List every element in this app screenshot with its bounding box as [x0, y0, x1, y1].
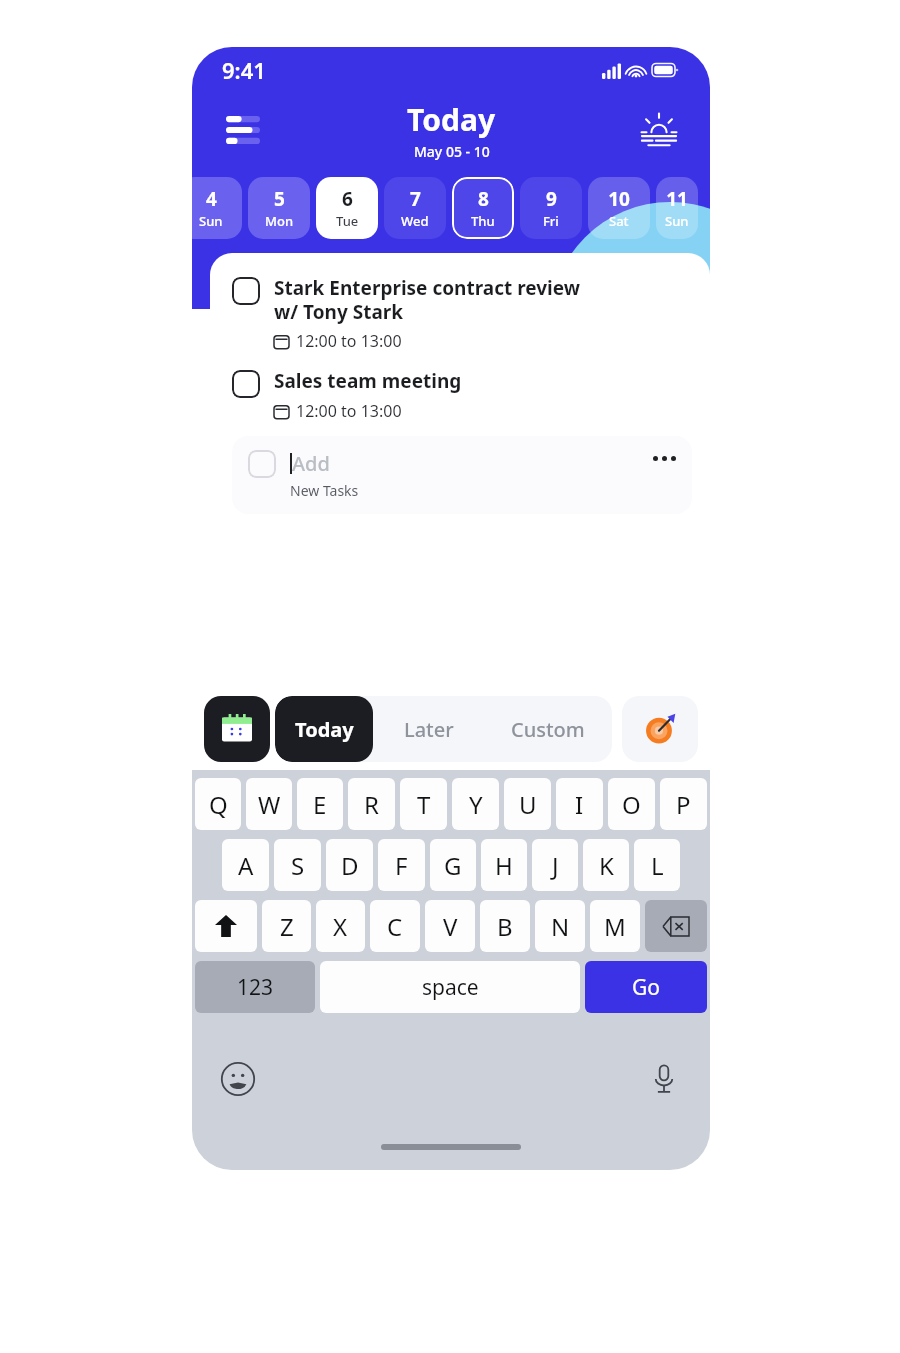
staticText: Custom: [511, 716, 585, 743]
staticText: M: [604, 910, 626, 943]
staticText: 6: [342, 186, 353, 212]
staticText: H: [495, 849, 513, 882]
button[interactable]: Add: [248, 450, 676, 500]
button[interactable]: N: [535, 900, 585, 952]
button[interactable]: Focus: [622, 696, 698, 762]
staticText: New Tasks: [290, 481, 359, 500]
button[interactable]: Z: [262, 900, 311, 952]
staticText: G: [444, 849, 462, 882]
staticText: U: [519, 788, 537, 821]
button[interactable]: Y: [452, 778, 499, 830]
button[interactable]: Shift: [195, 900, 257, 952]
staticText: C: [387, 910, 403, 943]
button[interactable]: F: [378, 839, 425, 891]
staticText: Q: [209, 788, 228, 821]
button[interactable]: Today: [275, 696, 373, 762]
button[interactable]: 123: [195, 961, 315, 1013]
button[interactable]: space: [320, 961, 580, 1013]
staticText: J: [552, 849, 559, 882]
staticText: L: [651, 849, 664, 882]
staticText: O: [622, 788, 641, 821]
button[interactable]: P: [660, 778, 707, 830]
staticText: 7: [410, 186, 421, 212]
staticText: Mon: [265, 212, 294, 230]
button[interactable]: More options: [653, 456, 676, 461]
staticText: Thu: [471, 212, 495, 230]
button[interactable]: V: [425, 900, 475, 952]
button[interactable]: Menu: [220, 107, 266, 153]
button[interactable]: S: [274, 839, 321, 891]
staticText: N: [551, 910, 570, 943]
button[interactable]: Sales team meeting: [232, 368, 692, 422]
staticText: Sales team meeting: [274, 368, 462, 394]
staticText: 9:41: [222, 55, 266, 85]
button[interactable]: I: [556, 778, 603, 830]
button[interactable]: 7: [384, 177, 446, 239]
button[interactable]: D: [326, 839, 373, 891]
button[interactable]: Voice input: [646, 1061, 682, 1097]
button[interactable]: K: [583, 839, 629, 891]
staticText: A: [238, 849, 254, 882]
staticText: Today: [295, 716, 354, 743]
button[interactable]: A: [222, 839, 269, 891]
staticText: I: [575, 788, 584, 821]
staticText: 9: [546, 186, 557, 212]
staticText: P: [676, 788, 691, 821]
staticText: 8: [478, 186, 489, 212]
button[interactable]: M: [590, 900, 640, 952]
button[interactable]: Emoji: [220, 1061, 256, 1097]
staticText: K: [599, 849, 614, 882]
staticText: Z: [280, 910, 294, 943]
button[interactable]: T: [400, 778, 447, 830]
button[interactable]: Calendar: [204, 696, 270, 762]
button[interactable]: Backspace: [645, 900, 707, 952]
button[interactable]: U: [504, 778, 551, 830]
staticText: Later: [404, 716, 454, 743]
staticText: Wed: [401, 212, 429, 230]
button[interactable]: H: [481, 839, 527, 891]
button[interactable]: B: [480, 900, 530, 952]
button[interactable]: 6: [316, 177, 378, 239]
staticText: Stark Enterprise contract review w/ Tony…: [274, 275, 580, 324]
button[interactable]: L: [634, 839, 680, 891]
button[interactable]: Custom: [484, 696, 612, 762]
button[interactable]: W: [246, 778, 292, 830]
button[interactable]: 5: [248, 177, 310, 239]
staticText: 123: [237, 973, 274, 1002]
staticText: Y: [469, 788, 483, 821]
staticText: Sat: [609, 212, 629, 230]
staticText: 12:00 to 13:00: [296, 330, 402, 352]
staticText: Tue: [336, 212, 359, 230]
button[interactable]: R: [348, 778, 395, 830]
staticText: May 05 - 10: [414, 142, 490, 161]
staticText: R: [364, 788, 379, 821]
button[interactable]: 8: [452, 177, 514, 239]
staticText: V: [443, 910, 458, 943]
button[interactable]: J: [532, 839, 578, 891]
staticText: T: [417, 788, 431, 821]
button[interactable]: X: [316, 900, 365, 952]
staticText: Go: [632, 973, 660, 1002]
button[interactable]: Weather: [636, 107, 682, 153]
button[interactable]: E: [297, 778, 343, 830]
staticText: X: [333, 910, 348, 943]
button[interactable]: Q: [195, 778, 241, 830]
button[interactable]: C: [370, 900, 420, 952]
button[interactable]: 11: [656, 177, 698, 239]
staticText: 11: [666, 186, 688, 212]
button[interactable]: Later: [373, 696, 484, 762]
button[interactable]: Stark Enterprise contract review w/ Tony…: [232, 275, 692, 352]
button[interactable]: 4: [192, 177, 242, 239]
staticText: D: [341, 849, 359, 882]
button[interactable]: 10: [588, 177, 650, 239]
button[interactable]: O: [608, 778, 655, 830]
button[interactable]: 9: [520, 177, 582, 239]
staticText: E: [313, 788, 327, 821]
staticText: W: [258, 788, 281, 821]
staticText: Sun: [665, 212, 689, 230]
staticText: S: [291, 849, 305, 882]
staticText: Fri: [543, 212, 559, 230]
staticText: 10: [608, 186, 630, 212]
button[interactable]: G: [430, 839, 476, 891]
button[interactable]: Go: [585, 961, 707, 1013]
